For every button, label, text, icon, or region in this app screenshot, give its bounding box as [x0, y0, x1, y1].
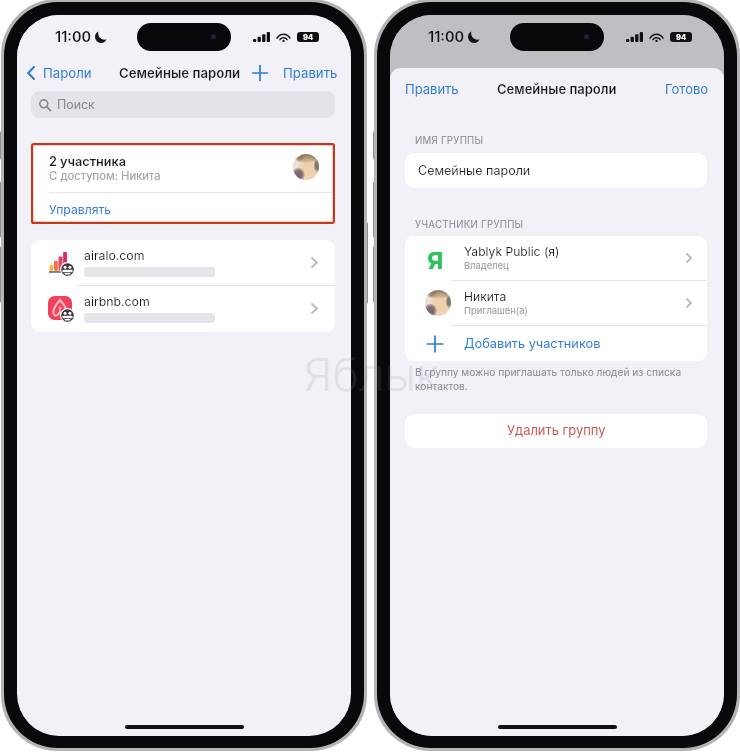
staticText: Добавить участников	[464, 336, 601, 351]
button[interactable]: airbnb.com	[31, 286, 335, 331]
staticText: Семейные пароли	[119, 65, 241, 81]
staticText: airalo.com	[84, 248, 145, 263]
button[interactable]: airalo.com	[31, 240, 335, 285]
staticText: 94	[303, 33, 314, 42]
staticText: Владелец	[464, 260, 509, 271]
staticText: 11:00	[428, 28, 465, 46]
staticText: УЧАСТНИКИ ГРУППЫ	[415, 219, 524, 231]
button[interactable]: Семейные пароли	[405, 153, 707, 188]
staticText: 94	[676, 33, 687, 42]
staticText: Пароли	[43, 65, 92, 81]
button[interactable]: 2 участника	[33, 145, 333, 192]
staticText: Приглашен(а)	[464, 305, 528, 316]
button[interactable]: Я	[405, 236, 707, 280]
staticText: Yablyk Public (я)	[464, 244, 560, 259]
button[interactable]: Править	[405, 81, 459, 97]
staticText: Удалить группу	[507, 423, 606, 439]
button[interactable]: Поиск	[31, 91, 335, 118]
staticText: airbnb.com	[84, 294, 150, 309]
staticText: 11:00	[55, 28, 92, 46]
button[interactable]: Готово	[665, 81, 709, 97]
button[interactable]	[33, 193, 333, 222]
staticText: В группу можно приглашать только людей и…	[415, 366, 687, 393]
button[interactable]: Удалить группу	[405, 414, 707, 448]
staticText: Править	[283, 65, 338, 81]
button[interactable]: Добавить участников	[405, 326, 707, 361]
staticText: Готово	[665, 81, 709, 97]
staticText: 2 участника	[49, 154, 127, 169]
button[interactable]: Никита	[405, 281, 707, 325]
staticText: С доступом: Никита	[49, 169, 161, 183]
staticText: Править	[405, 81, 459, 97]
staticText: Никита	[464, 289, 507, 304]
button[interactable]: Править	[283, 65, 338, 81]
staticText: Я	[427, 247, 444, 269]
button[interactable]: Добавить	[251, 64, 269, 82]
staticText: Поиск	[57, 97, 95, 112]
staticText: Управлять	[49, 202, 112, 217]
staticText: ИМЯ ГРУППЫ	[415, 135, 484, 147]
staticText: Яблык	[304, 347, 440, 401]
button[interactable]: Пароли	[27, 65, 92, 81]
staticText: Семейные пароли	[497, 81, 617, 97]
staticText: Семейные пароли	[418, 163, 531, 178]
